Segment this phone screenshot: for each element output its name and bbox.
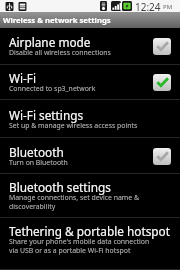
staticText: Set up & manage wireless access points [9,121,138,130]
staticText: Bluetooth settings [9,179,111,195]
button[interactable]: Wi-Fi [0,65,180,100]
staticText: Airplane mode [9,34,91,50]
staticText: PM [163,3,173,11]
staticText: 12:24 [135,0,161,12]
staticText: Manage connections, set device name & di… [9,193,149,211]
button[interactable]: Bluetooth settings [0,174,180,218]
staticText: Wireless & network settings [3,15,111,25]
staticText: Disable all wireless connections [9,48,111,57]
button[interactable]: Airplane mode [0,28,180,65]
staticText: Wi-Fi settings [9,107,84,123]
staticText: Share your phone's mobile data connectio… [9,237,155,255]
staticText: Connected to sp3_network [9,84,96,93]
button[interactable]: Wi-Fi settings [0,100,180,138]
staticText: Turn on Bluetooth [9,158,68,167]
staticText: Bluetooth [9,144,64,160]
staticText: Wi-Fi [9,70,36,86]
button[interactable]: Tethering & portable hotspot [0,218,180,270]
button[interactable]: Bluetooth [0,138,180,174]
staticText: Tethering & portable hotspot [9,223,170,239]
